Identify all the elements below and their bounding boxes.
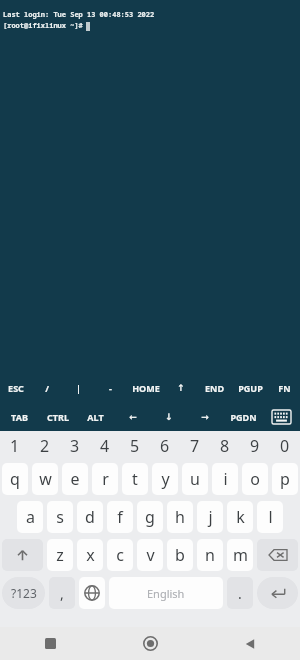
staticText: p: [280, 468, 290, 490]
button[interactable]: u: [182, 463, 208, 495]
staticText: n: [205, 544, 215, 566]
button[interactable]: r: [92, 463, 118, 495]
staticText: q: [10, 468, 20, 490]
staticText: /: [45, 382, 49, 394]
staticText: PGUP: [238, 382, 263, 394]
staticText: |: [76, 382, 81, 394]
staticText: x: [86, 544, 95, 566]
button[interactable]: /: [31, 373, 62, 402]
staticText: ←: [129, 412, 137, 422]
button[interactable]: 7: [180, 431, 210, 460]
button[interactable]: k: [227, 501, 253, 533]
staticText: .: [238, 584, 242, 603]
button[interactable]: ,: [49, 577, 75, 609]
button[interactable]: Arrow up: [165, 373, 197, 402]
button[interactable]: 3: [60, 431, 90, 460]
button[interactable]: END: [197, 373, 232, 402]
button[interactable]: 4: [90, 431, 120, 460]
staticText: g: [145, 506, 155, 528]
staticText: HOME: [132, 382, 160, 394]
button[interactable]: 2: [30, 431, 60, 460]
staticText: ALT: [87, 411, 104, 423]
button[interactable]: 1: [0, 431, 30, 460]
staticText: FN: [278, 382, 291, 394]
button[interactable]: i: [212, 463, 238, 495]
button[interactable]: y: [152, 463, 178, 495]
button[interactable]: x: [77, 539, 103, 571]
button[interactable]: TAB: [0, 402, 38, 431]
button[interactable]: f: [107, 501, 133, 533]
button[interactable]: o: [242, 463, 268, 495]
button[interactable]: Recent apps: [0, 627, 100, 660]
button[interactable]: a: [17, 501, 43, 533]
staticText: 7: [190, 435, 200, 457]
button[interactable]: b: [167, 539, 193, 571]
button[interactable]: 6: [150, 431, 180, 460]
staticText: k: [236, 506, 245, 528]
button[interactable]: English: [109, 577, 223, 609]
button[interactable]: Arrow left: [114, 402, 151, 431]
button[interactable]: |: [62, 373, 94, 402]
button[interactable]: Arrow right: [186, 402, 223, 431]
button[interactable]: PGUP: [232, 373, 268, 402]
button[interactable]: Home: [100, 627, 200, 660]
staticText: PGDN: [230, 411, 257, 423]
button[interactable]: Hide keyboard: [263, 402, 300, 431]
button[interactable]: q: [2, 463, 28, 495]
staticText: ↑: [177, 383, 185, 393]
button[interactable]: 9: [240, 431, 270, 460]
button[interactable]: PGDN: [223, 402, 263, 431]
button[interactable]: c: [107, 539, 133, 571]
button[interactable]: HOME: [126, 373, 165, 402]
staticText: ↓: [165, 412, 173, 422]
button[interactable]: 8: [210, 431, 240, 460]
staticText: d: [85, 506, 95, 528]
button[interactable]: Change language: [79, 577, 105, 609]
staticText: c: [116, 544, 124, 566]
button[interactable]: .: [227, 577, 253, 609]
staticText: Last login: Tue Sep 13 00:48:53 2022: [3, 10, 155, 20]
staticText: 8: [220, 435, 230, 457]
button[interactable]: d: [77, 501, 103, 533]
button[interactable]: n: [197, 539, 223, 571]
button[interactable]: g: [137, 501, 163, 533]
staticText: -: [109, 382, 112, 394]
button[interactable]: w: [32, 463, 58, 495]
button[interactable]: ALT: [77, 402, 114, 431]
staticText: a: [26, 506, 35, 528]
button[interactable]: 0: [270, 431, 300, 460]
staticText: i: [223, 468, 228, 490]
button[interactable]: l: [257, 501, 283, 533]
button[interactable]: t: [122, 463, 148, 495]
button[interactable]: Back: [200, 627, 300, 660]
button[interactable]: z: [47, 539, 73, 571]
button[interactable]: j: [197, 501, 223, 533]
button[interactable]: ?123: [2, 577, 45, 609]
staticText: 3: [70, 435, 80, 457]
button[interactable]: p: [272, 463, 298, 495]
button[interactable]: m: [227, 539, 253, 571]
button[interactable]: CTRL: [38, 402, 77, 431]
staticText: 6: [160, 435, 170, 457]
button[interactable]: ESC: [0, 373, 31, 402]
staticText: 0: [280, 435, 290, 457]
button[interactable]: 5: [120, 431, 150, 460]
button[interactable]: Shift: [2, 539, 43, 571]
button[interactable]: s: [47, 501, 73, 533]
staticText: l: [268, 506, 273, 528]
button[interactable]: -: [94, 373, 126, 402]
button[interactable]: FN: [268, 373, 300, 402]
button[interactable]: h: [167, 501, 193, 533]
button[interactable]: e: [62, 463, 88, 495]
staticText: t: [132, 468, 138, 490]
button[interactable]: v: [137, 539, 163, 571]
staticText: j: [208, 506, 213, 528]
staticText: b: [175, 544, 185, 566]
button[interactable]: Enter: [257, 577, 298, 609]
button[interactable]: Last login: Tue Sep 13 00:48:53 2022: [0, 0, 300, 373]
staticText: u: [190, 468, 200, 490]
button[interactable]: Backspace: [257, 539, 298, 571]
staticText: 1: [10, 435, 20, 457]
button[interactable]: Arrow down: [151, 402, 186, 431]
staticText: ,: [60, 584, 64, 603]
